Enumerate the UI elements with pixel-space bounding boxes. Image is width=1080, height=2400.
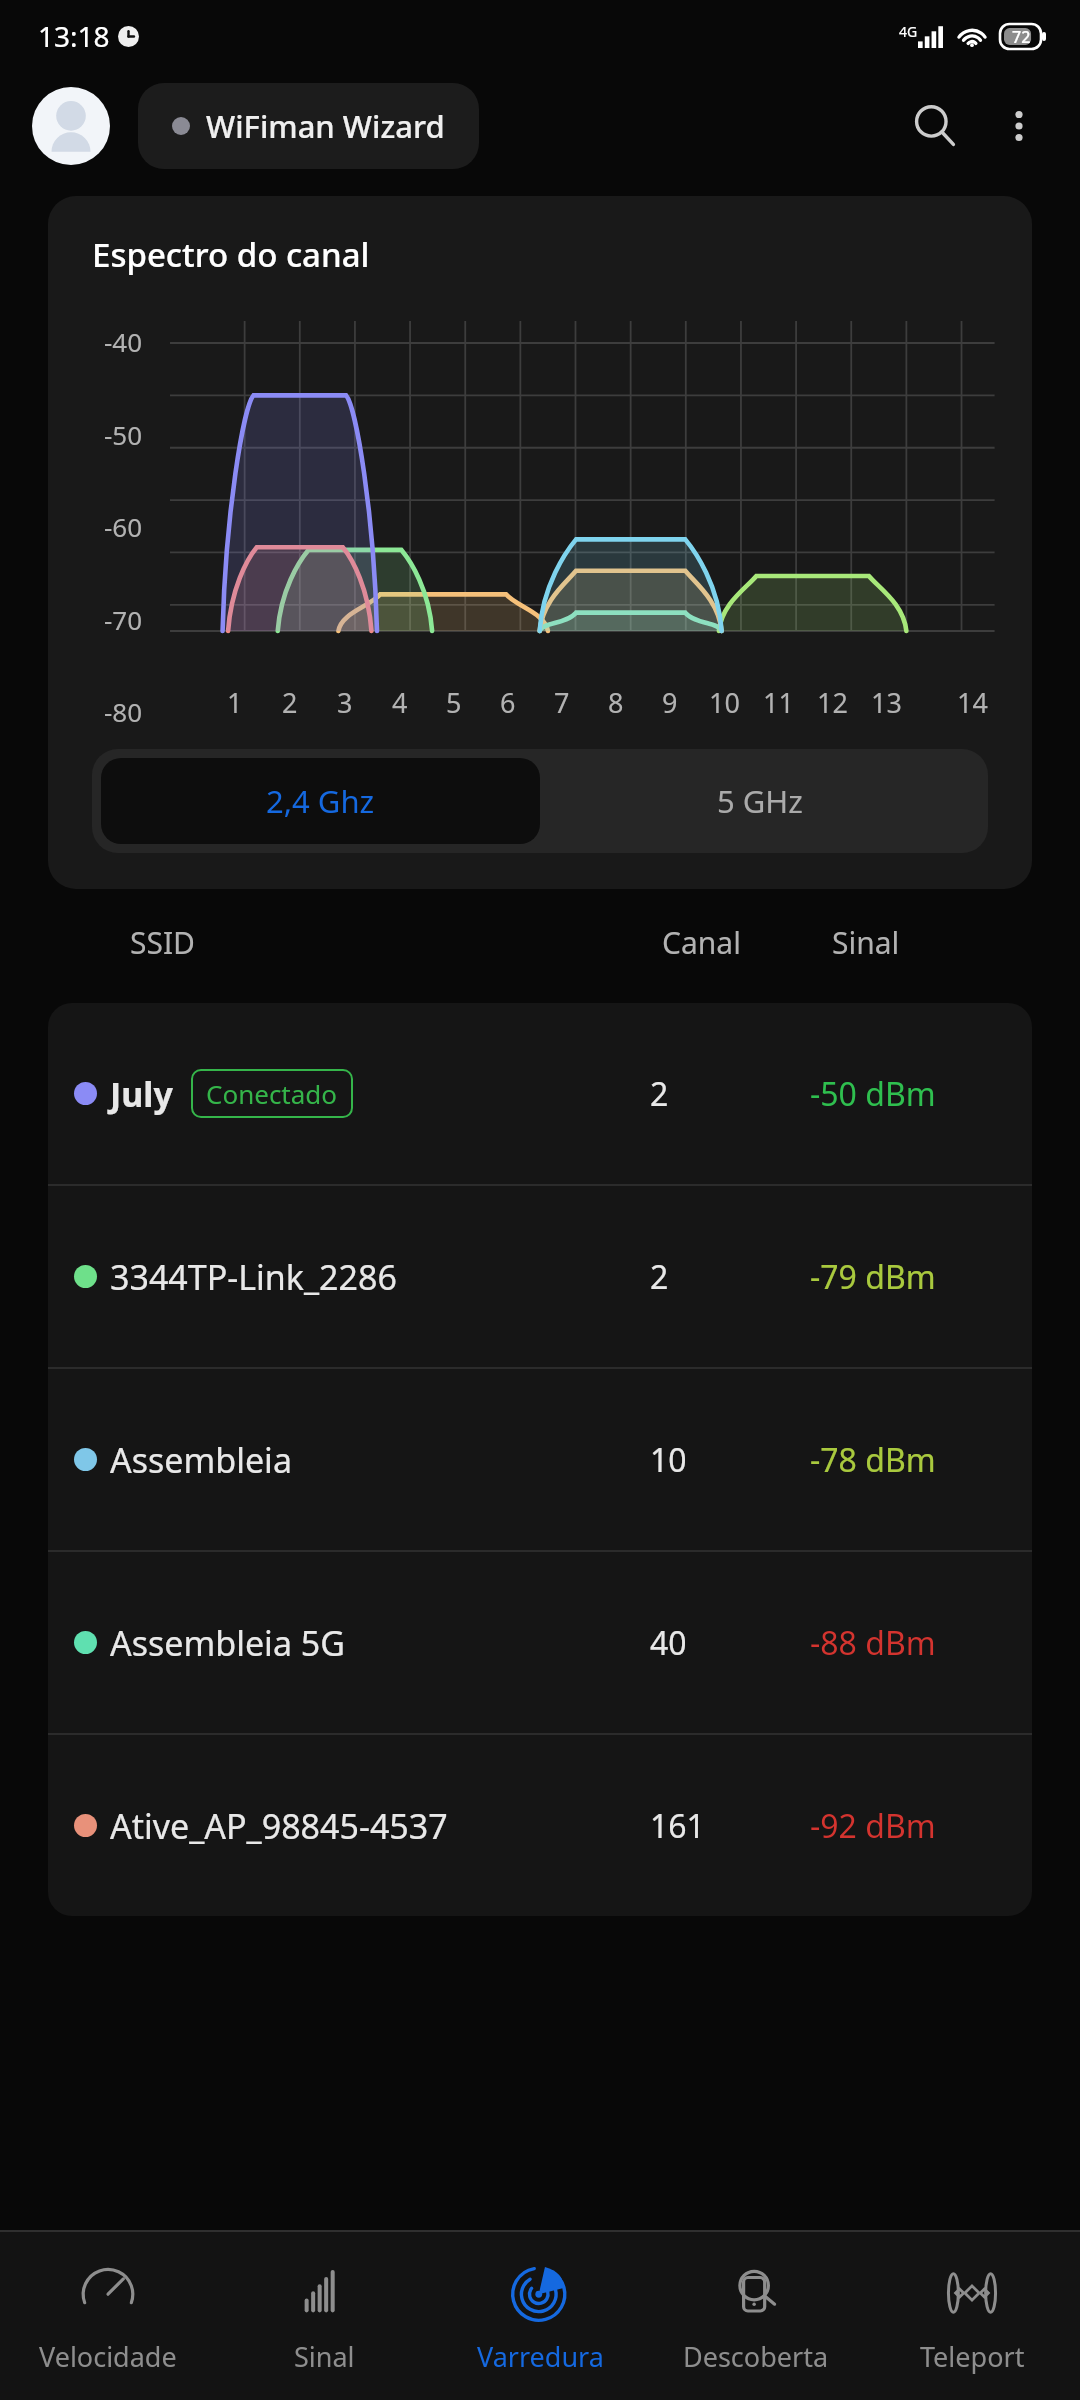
staticText: Assembleia [110,1437,292,1483]
staticText: 40 [650,1621,687,1665]
staticText: 2,4 Ghz [266,780,375,822]
staticText: 72 [1012,26,1031,48]
staticText: -90 [48,787,142,822]
button[interactable]: Teleport [864,2232,1080,2400]
button[interactable]: Sinal [216,2232,432,2400]
staticText: -60 [48,509,142,544]
staticText: Sinal [294,2338,355,2375]
staticText: 4 [392,684,408,721]
staticText: -40 [48,324,142,359]
staticText: -80 [48,694,142,729]
staticText: Descoberta [683,2338,829,2375]
staticText: Varredura [477,2338,604,2375]
button[interactable]: Profile [32,87,110,165]
button[interactable]: Assembleia 5G [48,1552,1032,1733]
staticText: 5 GHz [717,780,803,822]
button[interactable]: Velocidade [0,2232,216,2400]
staticText: -50 dBm [810,1072,936,1116]
staticText: Espectro do canal [92,232,370,277]
staticText: -50 [48,417,142,452]
button[interactable]: 2,4 Ghz [101,758,540,844]
staticText: 2 [650,1072,669,1116]
button[interactable]: Search [898,89,972,163]
staticText: 4G [899,22,918,41]
staticText: 2 [282,684,298,721]
button[interactable]: Varredura [432,2232,648,2400]
staticText: -78 dBm [810,1438,936,1482]
button[interactable]: Ative_AP_98845-4537 [48,1735,1032,1916]
button[interactable]: Assembleia [48,1369,1032,1550]
staticText: 3 [337,684,353,721]
staticText: Ative_AP_98845-4537 [110,1803,448,1849]
staticText: Sinal [832,922,900,963]
staticText: WiFiman Wizard [206,105,445,147]
staticText: 8 [608,684,624,721]
staticText: 2 [650,1255,669,1299]
staticText: Velocidade [39,2338,177,2375]
staticText: 3344TP-Link_2286 [110,1254,397,1300]
staticText: -79 dBm [810,1255,936,1299]
staticText: SSID [130,922,196,963]
button[interactable]: More options [986,93,1052,159]
staticText: 14 [957,684,988,721]
staticText: July [110,1071,173,1117]
staticText: Canal [662,922,741,963]
staticText: 10 [709,684,740,721]
staticText: 13 [871,684,902,721]
staticText: 7 [554,684,570,721]
staticText: Teleport [920,2338,1025,2375]
staticText: 5 [446,684,462,721]
staticText: 11 [763,684,794,721]
staticText: -92 dBm [810,1804,936,1848]
staticText: 6 [500,684,516,721]
button[interactable]: 3344TP-Link_2286 [48,1186,1032,1367]
staticText: 1 [227,684,243,721]
staticText: 161 [650,1804,705,1848]
button[interactable]: 5 GHz [540,758,979,844]
staticText: -70 [48,602,142,637]
staticText: 12 [817,684,848,721]
staticText: 13:18 [38,17,110,55]
staticText: -88 dBm [810,1621,936,1665]
button[interactable]: Descoberta [648,2232,864,2400]
staticText: Conectado [206,1076,338,1111]
staticText: Assembleia 5G [110,1620,346,1666]
staticText: 9 [662,684,678,721]
button[interactable]: July [48,1003,1032,1184]
staticText: 10 [650,1438,687,1482]
button[interactable]: WiFiman Wizard [138,83,479,169]
